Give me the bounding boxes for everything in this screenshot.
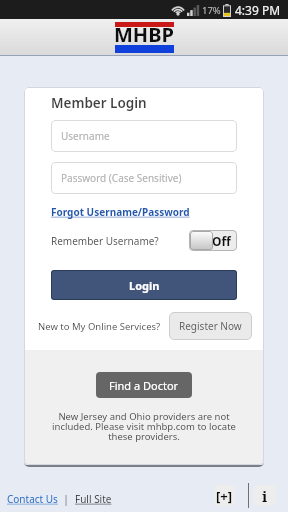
- button[interactable]: Contact Us: [7, 492, 58, 506]
- button[interactable]: Login: [51, 270, 237, 300]
- button[interactable]: Register Now: [169, 312, 252, 340]
- button[interactable]: Information: [254, 485, 276, 506]
- staticText: Member Login: [51, 94, 147, 112]
- button[interactable]: Find a Doctor: [96, 372, 192, 398]
- staticText: 17%: [202, 4, 221, 17]
- staticText: [+]: [216, 487, 233, 505]
- staticText: Contact Us: [7, 492, 58, 506]
- button[interactable]: Remember Username toggle, Off: [189, 230, 237, 251]
- button[interactable]: Password (Case Sensitive): [51, 162, 237, 194]
- button[interactable]: Enroll: [214, 485, 235, 506]
- staticText: |: [63, 491, 70, 506]
- staticText: Register Now: [179, 319, 242, 333]
- staticText: Forgot Username/Password: [51, 205, 190, 219]
- staticText: MHBP: [114, 21, 173, 48]
- staticText: i: [262, 486, 268, 506]
- staticText: New to My Online Services?: [38, 320, 161, 333]
- button[interactable]: Forgot Username/Password: [51, 205, 190, 219]
- button[interactable]: Username: [51, 120, 237, 152]
- button[interactable]: Full Site: [75, 492, 112, 506]
- staticText: Login: [129, 278, 160, 293]
- staticText: Off: [212, 233, 231, 249]
- staticText: Username: [61, 129, 110, 143]
- staticText: Find a Doctor: [109, 378, 179, 393]
- staticText: New Jersey and Ohio providers are not in…: [48, 410, 240, 443]
- staticText: Password (Case Sensitive): [61, 171, 182, 185]
- staticText: 4:39 PM: [235, 2, 281, 18]
- staticText: Remember Username?: [51, 234, 159, 248]
- staticText: Full Site: [75, 492, 112, 506]
